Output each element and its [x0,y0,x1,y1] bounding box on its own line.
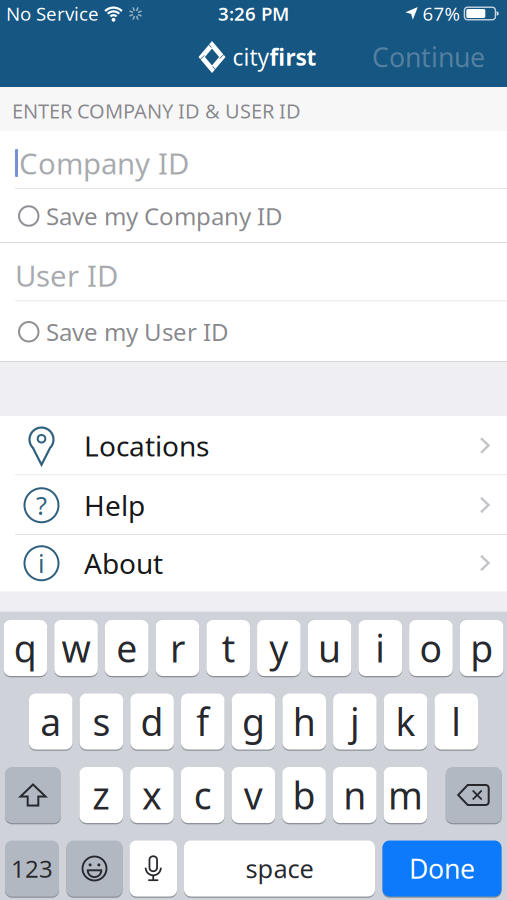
button[interactable]: Locations [0,416,507,475]
button[interactable]: n [333,767,376,823]
button[interactable]: i [0,535,507,591]
button[interactable]: y [257,620,301,676]
staticText: Done [409,851,475,886]
button[interactable]: Done [382,840,501,896]
staticText: t [222,623,235,673]
button[interactable]: a [29,693,72,749]
button[interactable]: s [80,693,123,749]
button[interactable]: Save my User ID [0,301,507,362]
button[interactable]: i [358,620,402,676]
staticText: y [269,623,288,673]
staticText: s [92,697,110,746]
staticText: city [232,42,269,72]
staticText: i [38,546,45,580]
button[interactable]: f [181,693,225,749]
button[interactable]: Shift [5,767,61,823]
button[interactable]: space [184,840,375,896]
staticText: Save my Company ID [46,200,283,232]
staticText: z [92,770,110,820]
staticText: b [293,770,316,820]
button[interactable]: z [79,767,123,823]
button[interactable]: l [434,693,478,749]
staticText: m [388,770,423,820]
button[interactable]: u [308,620,351,676]
staticText: 67% [422,1,460,26]
button[interactable]: o [409,620,453,676]
button[interactable]: g [232,693,275,749]
button[interactable]: b [282,767,326,823]
staticText: About [84,545,163,582]
staticText: Locations [84,427,209,464]
button[interactable]: User ID [0,243,507,301]
staticText: x [142,770,162,820]
button[interactable]: q [3,620,47,676]
button[interactable]: Dictation [129,840,177,896]
staticText: a [40,697,61,746]
button[interactable]: x [130,767,174,823]
button[interactable]: d [130,693,174,749]
staticText: o [419,623,442,673]
staticText: c [194,770,212,820]
staticText: n [343,770,366,820]
staticText: i [375,623,385,673]
staticText: j [350,697,360,746]
button[interactable]: ? [0,475,507,535]
button[interactable]: Continue [372,39,507,75]
staticText: q [14,623,37,673]
staticText: Continue [372,39,485,75]
staticText: g [242,697,265,746]
button[interactable]: Delete [446,767,502,823]
staticText: r [170,623,185,673]
button[interactable]: Save my Company ID [0,189,507,243]
button[interactable]: k [384,693,427,749]
staticText: ENTER COMPANY ID & USER ID [12,97,301,124]
button[interactable]: e [105,620,148,676]
staticText: e [116,623,137,673]
staticText: l [451,697,461,746]
button[interactable]: h [282,693,326,749]
button[interactable]: m [384,767,427,823]
staticText: d [141,697,164,746]
staticText: f [196,697,209,746]
button[interactable]: c [181,767,224,823]
staticText: p [470,623,493,673]
staticText: h [293,697,316,746]
button[interactable]: r [156,620,199,676]
staticText: 123 [11,853,53,884]
staticText: 3:26 PM [218,1,289,26]
button[interactable]: w [54,620,98,676]
button[interactable]: t [206,620,250,676]
button[interactable]: v [231,767,275,823]
staticText: space [245,852,313,885]
staticText: w [61,623,90,673]
button[interactable]: Company ID [0,131,507,189]
button[interactable]: j [333,693,377,749]
button[interactable]: p [460,620,503,676]
staticText: ? [36,488,47,522]
staticText: v [244,770,263,820]
staticText: Save my User ID [46,316,229,348]
button[interactable]: 123 [5,840,59,896]
staticText: k [396,697,416,746]
button[interactable]: Emoji [66,840,122,896]
staticText: Company ID [19,143,189,182]
staticText: User ID [15,256,118,295]
staticText: first [269,42,316,72]
staticText: u [318,623,341,673]
staticText: Help [84,487,145,524]
staticText: No Service [6,1,99,26]
